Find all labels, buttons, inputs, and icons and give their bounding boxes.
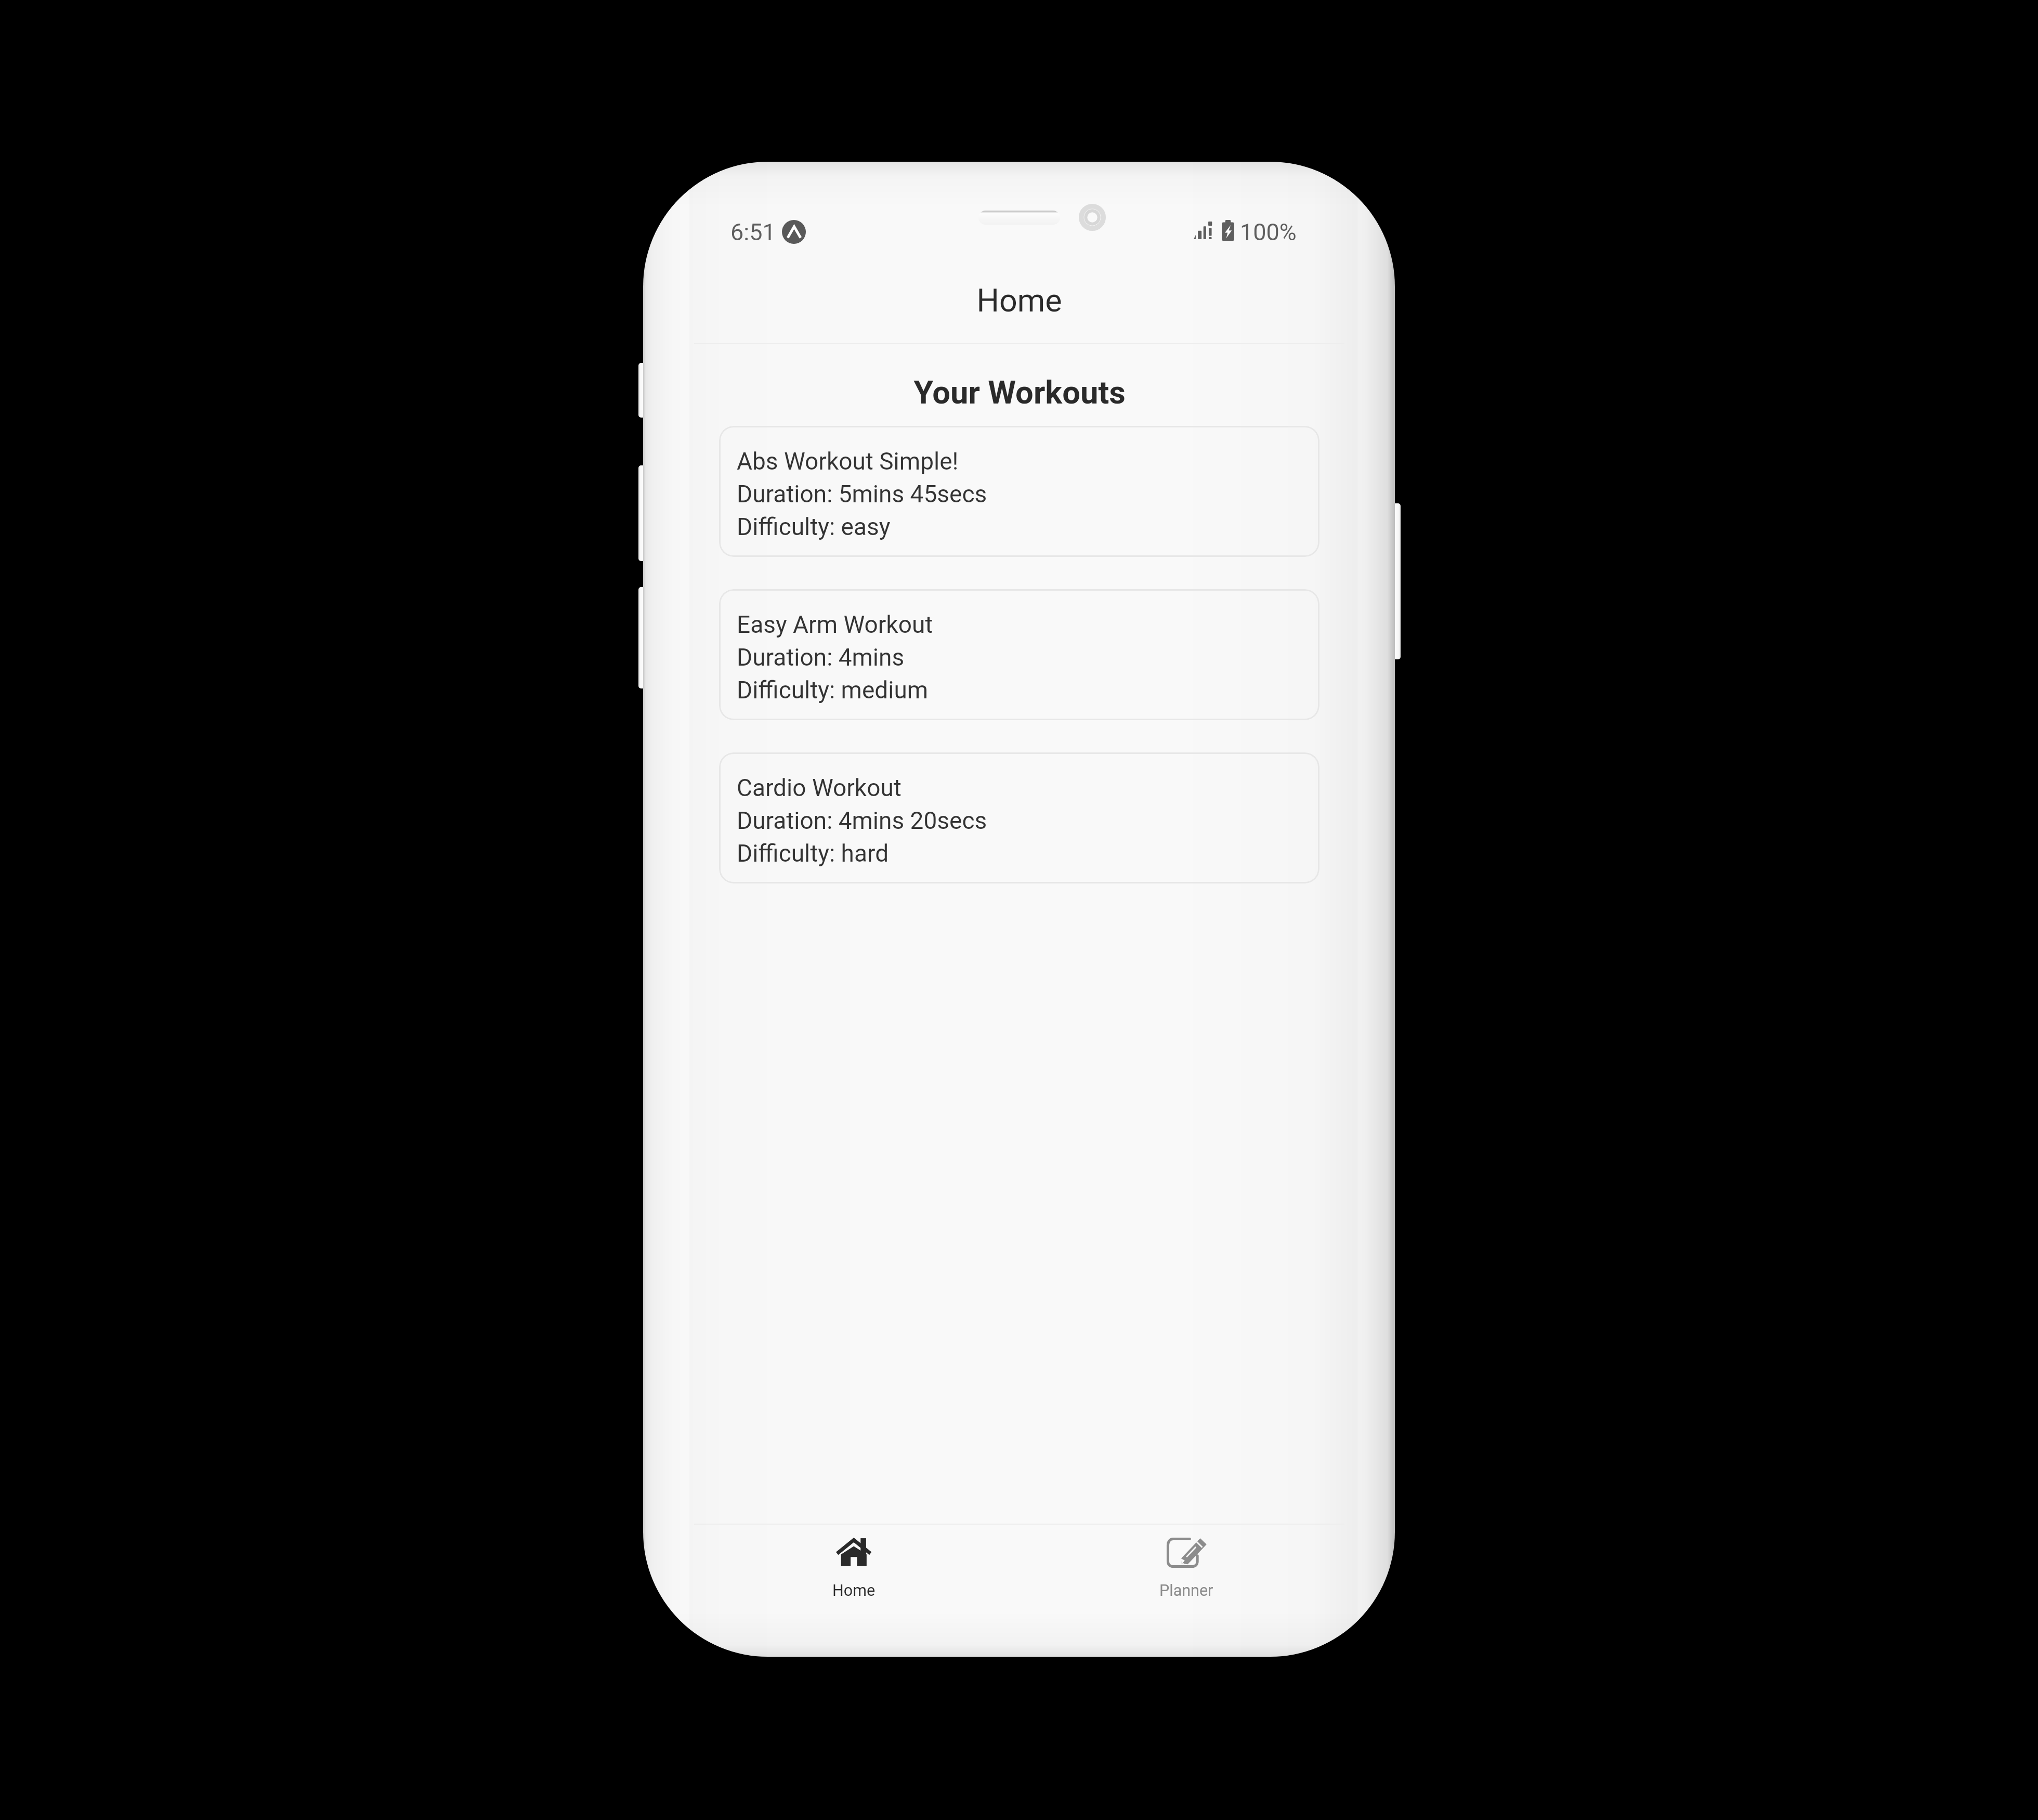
button[interactable]: Cardio Workout Duration: 4mins 20secs Di…: [719, 752, 1320, 883]
staticText: 100%: [1240, 218, 1297, 246]
button[interactable]: Planner tab: [1020, 1525, 1353, 1635]
staticText: Planner: [1159, 1581, 1213, 1600]
button[interactable]: Home tab: [687, 1525, 1020, 1635]
button[interactable]: Abs Workout Simple! Duration: 5mins 45se…: [719, 426, 1320, 557]
staticText: Cardio Workout Duration: 4mins 20secs Di…: [737, 774, 987, 867]
staticText: Home: [976, 282, 1062, 319]
staticText: Easy Arm Workout Duration: 4mins Difficu…: [737, 610, 933, 704]
staticText: Abs Workout Simple! Duration: 5mins 45se…: [737, 447, 987, 541]
staticText: Home: [832, 1581, 876, 1600]
staticText: Your Workouts: [913, 374, 1126, 411]
button[interactable]: Easy Arm Workout Duration: 4mins Difficu…: [719, 589, 1320, 720]
other: Planner tab: [1167, 1538, 1207, 1568]
staticText: 6:51: [730, 218, 776, 246]
other: Home tab: [835, 1538, 872, 1566]
